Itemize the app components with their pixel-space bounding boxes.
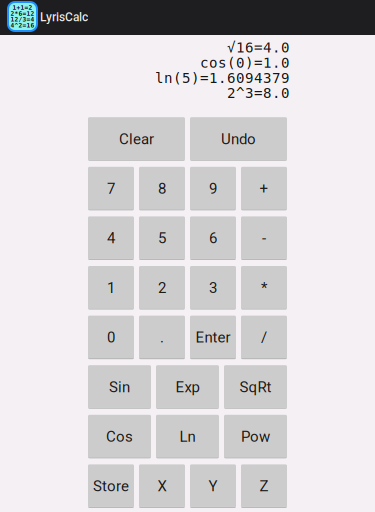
staticText: √16=4.0 (227, 39, 290, 56)
button[interactable]: - (241, 216, 287, 260)
button[interactable]: Y (190, 464, 236, 508)
staticText: SqRt (239, 378, 271, 396)
staticText: / (261, 329, 267, 346)
staticText: * (261, 279, 267, 297)
staticText: Clear (119, 130, 154, 148)
button[interactable]: X (139, 464, 185, 508)
staticText: 1 (107, 279, 115, 297)
button[interactable]: 4 (88, 216, 134, 260)
staticText: Cos (106, 428, 133, 445)
staticText: 8 (158, 180, 166, 197)
staticText: Ln (179, 428, 195, 445)
button[interactable]: 1 (88, 266, 134, 310)
button[interactable]: 2 (139, 266, 185, 310)
button[interactable]: SqRt (224, 365, 287, 409)
staticText: + (259, 180, 268, 197)
staticText: LyrisCalc (40, 10, 88, 24)
staticText: Z (259, 477, 268, 495)
button[interactable]: Exp (156, 365, 219, 409)
staticText: - (262, 229, 266, 247)
button[interactable]: Ln (156, 415, 219, 458)
staticText: 2 (158, 279, 166, 297)
button[interactable]: * (241, 266, 287, 310)
button[interactable]: 7 (88, 167, 134, 210)
button[interactable]: 3 (190, 266, 236, 310)
staticText: cos(0)=1.0 (200, 55, 290, 71)
staticText: 12/3=4 (10, 16, 34, 23)
button[interactable]: 0 (88, 316, 134, 359)
button[interactable]: . (139, 316, 185, 359)
staticText: Exp (175, 378, 199, 396)
staticText: Enter (195, 329, 230, 346)
button[interactable]: Enter (190, 316, 236, 359)
button[interactable]: + (241, 167, 287, 210)
staticText: 2*6=12 (10, 10, 34, 17)
button[interactable]: 6 (190, 216, 236, 260)
staticText: 4 (107, 229, 115, 247)
button[interactable]: Pow (224, 415, 287, 458)
staticText: Y (208, 477, 217, 495)
button[interactable]: Sin (88, 365, 151, 409)
button[interactable]: Z (241, 464, 287, 508)
button[interactable]: Store (88, 464, 134, 508)
staticText: 2^3=8.0 (227, 85, 290, 101)
staticText: 3 (209, 279, 217, 297)
staticText: 0 (107, 329, 115, 346)
staticText: Sin (109, 378, 130, 396)
button[interactable]: Undo (190, 117, 287, 161)
staticText: 6 (209, 229, 217, 247)
staticText: 4^2=16 (10, 22, 34, 29)
button[interactable]: 5 (139, 216, 185, 260)
button[interactable]: / (241, 316, 287, 359)
staticText: Undo (221, 130, 256, 148)
staticText: 9 (209, 180, 217, 197)
staticText: 7 (107, 180, 115, 197)
staticText: 1+1=2 (12, 4, 32, 11)
button[interactable]: 8 (139, 167, 185, 210)
staticText: . (160, 329, 164, 346)
staticText: ln(5)=1.6094379 (155, 70, 290, 86)
staticText: Pow (241, 428, 270, 445)
staticText: X (157, 477, 166, 495)
button[interactable]: Clear (88, 117, 185, 161)
button[interactable]: 9 (190, 167, 236, 210)
staticText: Store (93, 477, 129, 495)
button[interactable]: Cos (88, 415, 151, 458)
staticText: 5 (158, 229, 166, 247)
